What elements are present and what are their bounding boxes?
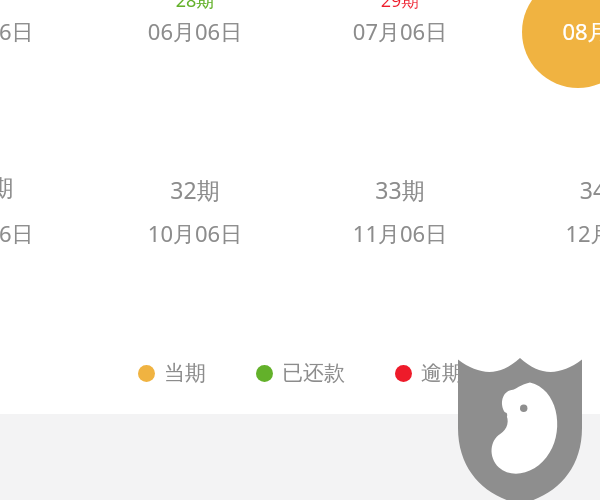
button[interactable]: 已还款 bbox=[254, 356, 347, 390]
staticText: 逾期 bbox=[421, 360, 463, 386]
staticText: 11月06日 bbox=[250, 218, 550, 248]
staticText: 当期 bbox=[164, 360, 206, 386]
staticText: 06月06日 bbox=[45, 16, 345, 46]
staticText: 29期 bbox=[250, 0, 550, 13]
staticText: 12月 bbox=[439, 218, 600, 248]
staticText: 10月06日 bbox=[45, 218, 345, 248]
staticText: 34 bbox=[443, 174, 600, 205]
button[interactable]: 当期 bbox=[136, 356, 208, 390]
staticText: 07月06日 bbox=[250, 16, 550, 46]
staticText: 32期 bbox=[45, 174, 345, 205]
button[interactable]: 当期 08月 bbox=[0, 0, 600, 414]
staticText: 33期 bbox=[250, 174, 550, 205]
button[interactable]: 逾期 bbox=[393, 356, 465, 390]
staticText: 06日 bbox=[0, 16, 160, 46]
staticText: 08月 bbox=[436, 16, 600, 46]
staticText: 已还款 bbox=[282, 360, 345, 386]
staticText: 28期 bbox=[45, 0, 345, 13]
other: 当期 08月 bbox=[0, 0, 600, 414]
staticText: 06日 bbox=[0, 218, 160, 248]
staticText: 期 bbox=[0, 174, 152, 203]
